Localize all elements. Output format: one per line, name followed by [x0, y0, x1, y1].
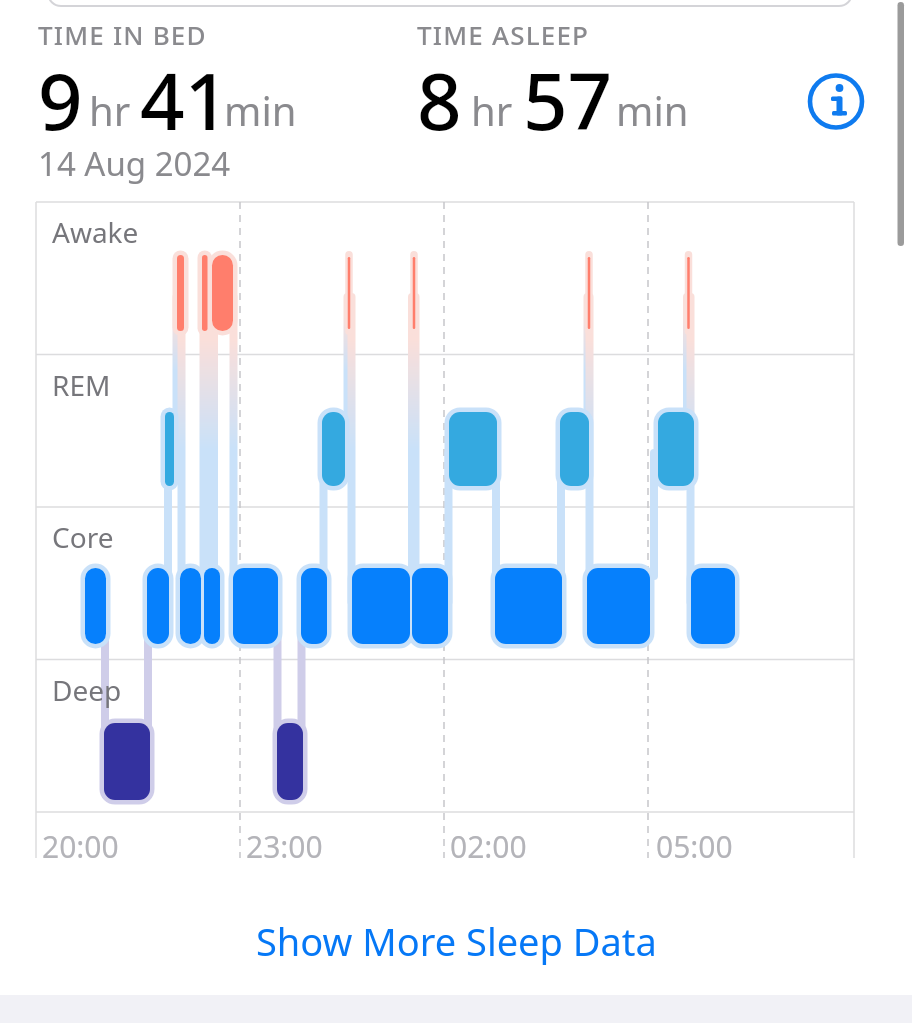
staticText: min: [224, 83, 297, 137]
staticText: 02:00: [450, 826, 527, 867]
staticText: 41: [140, 47, 230, 153]
staticText: TIME IN BED: [38, 17, 207, 52]
staticText: 05:00: [656, 826, 733, 867]
staticText: Awake: [52, 213, 139, 251]
staticText: 9: [38, 47, 83, 153]
staticText: hr: [471, 83, 513, 137]
staticText: TIME ASLEEP: [417, 17, 590, 52]
staticText: 8: [417, 47, 462, 153]
button[interactable]: Show More Sleep Data: [256, 915, 657, 967]
staticText: 20:00: [42, 826, 119, 867]
staticText: 14 Aug 2024: [38, 141, 231, 186]
staticText: 57: [523, 47, 613, 153]
staticText: REM: [52, 366, 111, 404]
staticText: hr: [89, 83, 131, 137]
button[interactable]: [805, 70, 868, 133]
staticText: min: [616, 83, 689, 137]
staticText: Show More Sleep Data: [256, 915, 657, 967]
staticText: 23:00: [246, 826, 323, 867]
staticText: Deep: [52, 671, 122, 709]
staticText: Core: [52, 518, 114, 556]
